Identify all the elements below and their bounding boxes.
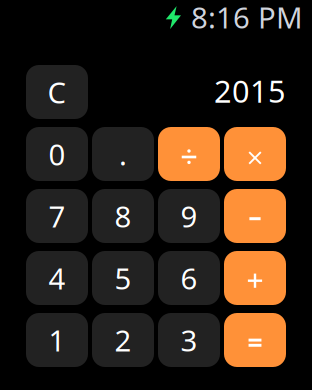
staticText: 0 (48, 134, 65, 173)
staticText: 6 (180, 258, 197, 297)
button[interactable]: . (92, 127, 154, 181)
button[interactable]: Divide (158, 127, 220, 181)
staticText: 8:16 PM (191, 0, 303, 36)
button[interactable]: 2 (92, 313, 154, 367)
staticText: 2015 (214, 70, 286, 111)
button[interactable]: Minus (224, 189, 286, 243)
button[interactable]: Clear (26, 65, 88, 119)
staticText: 7 (48, 196, 65, 235)
staticText: 1 (48, 320, 65, 359)
staticText: . (119, 134, 127, 173)
staticText: 4 (48, 258, 65, 297)
staticText: 8 (114, 196, 131, 235)
button[interactable]: 8 (92, 189, 154, 243)
button[interactable]: 4 (26, 251, 88, 305)
button[interactable]: Multiply (224, 127, 286, 181)
staticText: 9 (180, 196, 197, 235)
button[interactable]: 6 (158, 251, 220, 305)
staticText: 3 (180, 320, 197, 359)
button[interactable]: 5 (92, 251, 154, 305)
staticText: 2 (114, 320, 131, 359)
button[interactable]: Equals (224, 313, 286, 367)
button[interactable]: 3 (158, 313, 220, 367)
button[interactable]: 1 (26, 313, 88, 367)
button[interactable]: 9 (158, 189, 220, 243)
staticText: 5 (114, 258, 131, 297)
button[interactable]: 7 (26, 189, 88, 243)
staticText: C (47, 72, 66, 111)
button[interactable]: Plus (224, 251, 286, 305)
button[interactable]: 0 (26, 127, 88, 181)
